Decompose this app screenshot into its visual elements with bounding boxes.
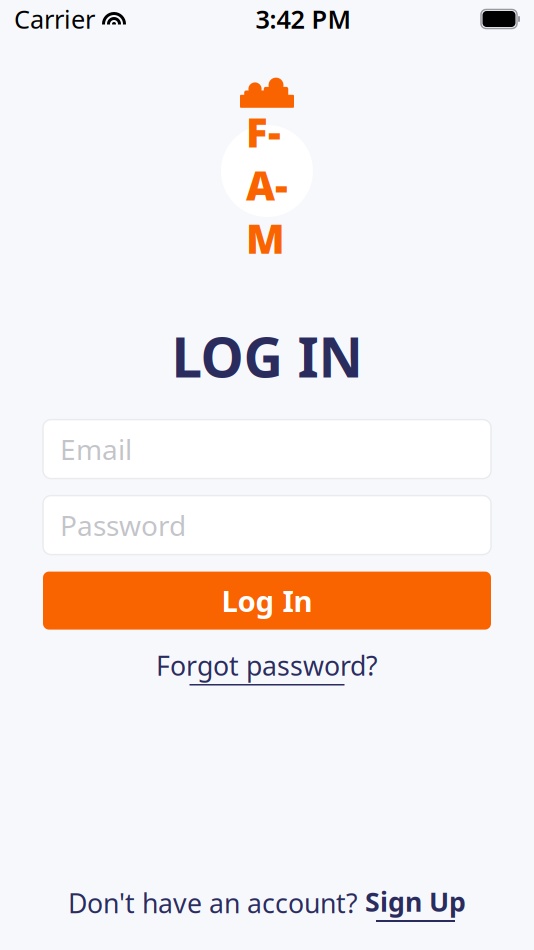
staticText: Log In bbox=[221, 581, 312, 620]
button[interactable]: Don't have an account? bbox=[58, 878, 476, 928]
staticText: LOG IN bbox=[171, 320, 362, 393]
button[interactable]: Forgot password? bbox=[150, 644, 384, 689]
staticText: Carrier bbox=[14, 2, 95, 36]
staticText: Password bbox=[60, 506, 186, 544]
staticText: Email bbox=[60, 430, 132, 468]
staticText: FAM bbox=[246, 105, 288, 265]
button[interactable]: Log In bbox=[43, 572, 491, 630]
staticText: Forgot password? bbox=[156, 648, 378, 683]
staticText: Don't have an account? bbox=[68, 885, 358, 920]
staticText: 3:42 PM bbox=[255, 2, 351, 36]
staticText: Sign Up bbox=[365, 884, 466, 919]
